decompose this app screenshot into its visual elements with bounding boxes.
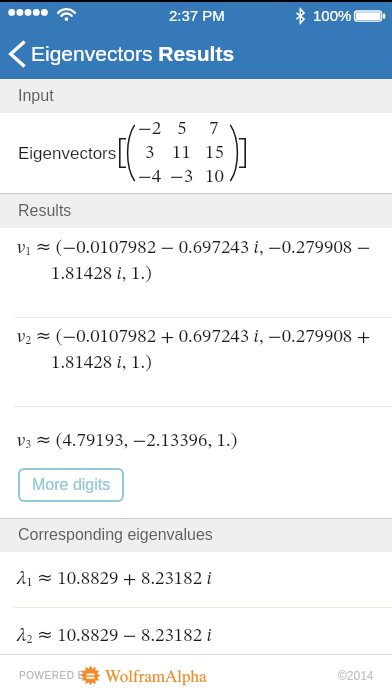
staticText: POWERED BY (19, 670, 93, 681)
staticText: Results (18, 202, 72, 220)
staticText: WolframAlpha (105, 664, 207, 687)
staticText: −2 (138, 120, 162, 139)
staticText: v1 ≈ (−0.0107982 − 0.697243 i, −0.279908… (17, 235, 371, 258)
staticText: λ2 ≈ 10.8829 − 8.23182 i (17, 623, 212, 646)
staticText: −4 (138, 168, 162, 187)
staticText: v2 ≈ (−0.0107982 + 0.697243 i, −0.279908… (17, 324, 371, 347)
staticText: 15 (205, 144, 224, 163)
staticText: 10 (205, 168, 224, 187)
staticText: Eigenvectors Results (31, 42, 235, 65)
button[interactable]: More digits (18, 468, 124, 502)
staticText: ©2014 (338, 669, 374, 682)
staticText: 100% (313, 7, 352, 24)
staticText: 3 (145, 144, 155, 163)
staticText: 1.81428 i, 1.) (51, 265, 152, 284)
staticText: v3 ≈ (4.79193, −2.13396, 1.) (17, 428, 238, 451)
button[interactable]: Back (0, 28, 34, 79)
staticText: Corresponding eigenvalues (18, 526, 213, 544)
staticText: 7 (209, 120, 219, 139)
staticText: 5 (177, 120, 187, 139)
staticText: −3 (170, 168, 194, 187)
staticText: More digits (32, 476, 111, 494)
staticText: 2:37 PM (169, 7, 225, 24)
staticText: 11 (172, 144, 191, 163)
staticText: λ1 ≈ 10.8829 + 8.23182 i (17, 566, 212, 589)
staticText: Input (18, 87, 54, 105)
staticText: Eigenvectors (18, 144, 117, 163)
staticText: 1.81428 i, 1.) (51, 354, 152, 373)
